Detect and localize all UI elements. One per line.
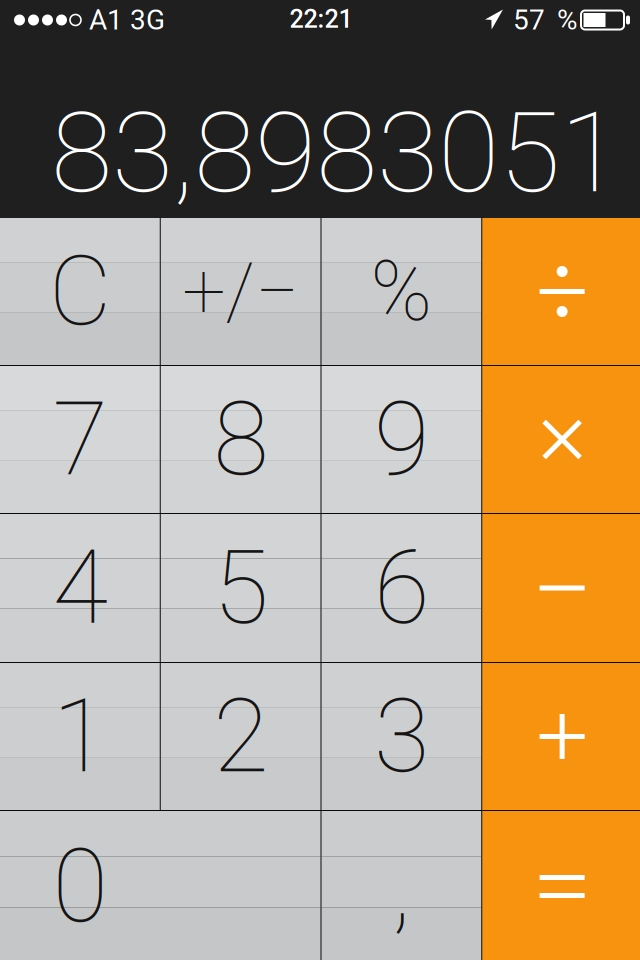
staticText: , xyxy=(392,827,411,946)
button[interactable]: +/− xyxy=(161,218,321,365)
staticText: +/− xyxy=(182,246,299,337)
staticText: 3 xyxy=(374,677,429,796)
staticText: 0 xyxy=(52,827,107,946)
button[interactable]: 0 xyxy=(0,811,320,960)
button[interactable]: 1 xyxy=(0,663,160,810)
button[interactable]: 5 xyxy=(161,514,321,662)
button[interactable]: % xyxy=(321,218,481,365)
staticText: 8 xyxy=(213,380,268,499)
staticText: 3G xyxy=(130,4,165,36)
button[interactable]: C xyxy=(0,218,160,365)
staticText: 4 xyxy=(52,529,107,647)
button[interactable]: Divide xyxy=(482,218,640,365)
staticText: 22:21 xyxy=(289,4,352,34)
button[interactable]: 7 xyxy=(0,366,160,513)
button[interactable]: , xyxy=(321,811,481,960)
staticText: 1 xyxy=(52,677,107,796)
staticText: % xyxy=(557,4,578,36)
button[interactable]: 8 xyxy=(161,366,321,513)
button[interactable]: Add xyxy=(482,663,640,810)
button[interactable]: 9 xyxy=(321,366,481,513)
staticText: 7 xyxy=(52,380,107,499)
staticText: A1 xyxy=(89,4,123,36)
staticText: 5 xyxy=(213,529,268,647)
staticText: C xyxy=(49,235,111,348)
staticText: 2 xyxy=(213,677,268,796)
staticText: 57 xyxy=(513,4,545,36)
button[interactable]: Subtract xyxy=(482,514,640,662)
button[interactable]: 3 xyxy=(321,663,481,810)
button[interactable]: Multiply xyxy=(482,366,640,513)
button[interactable]: 4 xyxy=(0,514,160,662)
button[interactable]: Equals xyxy=(482,811,640,960)
button[interactable]: 2 xyxy=(161,663,321,810)
staticText: % xyxy=(370,243,432,340)
staticText: 9 xyxy=(374,380,429,499)
staticText: 6 xyxy=(374,529,429,647)
button[interactable]: 6 xyxy=(321,514,481,662)
staticText: 83,8983051 xyxy=(51,87,621,219)
